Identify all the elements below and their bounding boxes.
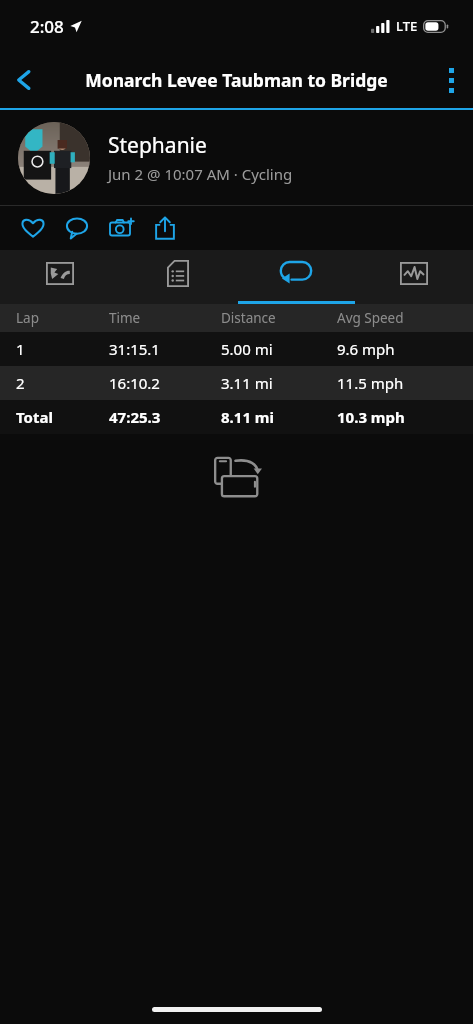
staticText: Avg Speed: [337, 309, 404, 327]
staticText: 16:10.2: [109, 373, 160, 393]
staticText: 5.00 mi: [221, 339, 273, 359]
button[interactable]: Comment: [62, 213, 92, 243]
staticText: 11.5 mph: [337, 373, 404, 393]
button[interactable]: 1: [0, 332, 473, 366]
button[interactable]: Share: [150, 213, 180, 243]
staticText: Total: [16, 407, 53, 427]
button[interactable]: Like: [18, 213, 48, 243]
staticText: Lap: [16, 309, 39, 327]
button[interactable]: Details: [119, 250, 237, 304]
staticText: 31:15.1: [109, 339, 160, 359]
staticText: Time: [109, 309, 141, 327]
staticText: 2:08: [30, 15, 64, 38]
staticText: 1: [16, 339, 25, 359]
other: Rotate device for more detail: [211, 454, 263, 502]
button[interactable]: Analysis: [355, 250, 473, 304]
staticText: 10.3 mph: [337, 407, 405, 427]
staticText: 47:25.3: [109, 407, 161, 427]
staticText: 2: [16, 373, 25, 393]
button[interactable]: More options: [429, 58, 473, 102]
button[interactable]: Map: [0, 250, 119, 304]
staticText: 8.11 mi: [221, 407, 274, 427]
other: Profile photo: [18, 122, 90, 194]
button[interactable]: Back: [0, 56, 48, 104]
staticText: Jun 2 @ 10:07 AM · Cycling: [108, 164, 293, 184]
button[interactable]: Add photo: [106, 213, 136, 243]
staticText: 9.6 mph: [337, 339, 395, 359]
staticText: Distance: [221, 309, 276, 327]
button[interactable]: Profile photo: [0, 110, 473, 205]
staticText: LTE: [396, 17, 418, 35]
staticText: Monarch Levee Taubman to Bridge: [85, 68, 388, 92]
staticText: 3.11 mi: [221, 373, 273, 393]
button[interactable]: Laps: [237, 250, 355, 304]
staticText: Stephanie: [108, 131, 207, 160]
button[interactable]: 2: [0, 366, 473, 400]
